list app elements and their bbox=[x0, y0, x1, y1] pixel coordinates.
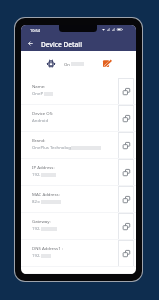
button[interactable]: Copy bbox=[118, 240, 134, 267]
staticText: MAC Address: bbox=[32, 191, 60, 197]
staticText: On bbox=[64, 61, 71, 67]
staticText: DNS Address2 : bbox=[32, 272, 63, 274]
staticText: 192. bbox=[32, 171, 41, 177]
button[interactable]: Copy bbox=[118, 186, 134, 213]
button[interactable]: Copy bbox=[118, 78, 134, 105]
staticText: Device OS: bbox=[32, 110, 54, 116]
button[interactable]: Copy bbox=[118, 132, 134, 159]
button[interactable]: Copy bbox=[118, 105, 134, 132]
staticText: IP Address: bbox=[32, 164, 55, 170]
staticText: Brand: bbox=[32, 137, 46, 143]
staticText: OneP bbox=[32, 90, 44, 96]
button[interactable]: Edit device name bbox=[101, 57, 113, 69]
button[interactable]: Copy bbox=[118, 213, 134, 240]
staticText: 82:c bbox=[32, 198, 41, 204]
button[interactable]: Back bbox=[25, 38, 35, 48]
staticText: Name: bbox=[32, 83, 46, 89]
button[interactable]: Copy bbox=[118, 159, 134, 186]
staticText: 192. bbox=[32, 252, 41, 258]
staticText: OnePlus Technolog bbox=[32, 144, 71, 150]
staticText: Android bbox=[32, 117, 49, 123]
staticText: 10:54 bbox=[30, 28, 40, 33]
staticText: 192. bbox=[32, 225, 41, 231]
staticText: Gateway: bbox=[32, 218, 51, 224]
staticText: DNS Address1 : bbox=[32, 245, 63, 251]
staticText: Device Detail bbox=[41, 40, 82, 49]
